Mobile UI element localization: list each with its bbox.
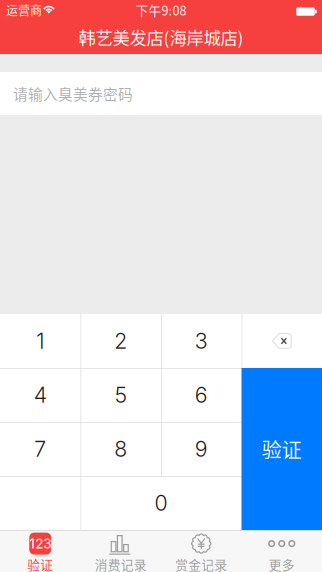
button[interactable]: 7: [0, 422, 80, 476]
staticText: 1: [36, 328, 44, 354]
staticText: 验证: [262, 434, 302, 463]
staticText: 验证: [27, 555, 53, 572]
staticText: 2: [114, 328, 127, 354]
staticText: 更多: [269, 555, 295, 572]
staticText: 运营商: [6, 1, 42, 19]
button[interactable]: 更多: [241, 530, 322, 572]
button[interactable]: 请输入臭美券密码: [0, 72, 322, 115]
staticText: 请输入臭美券密码: [13, 83, 133, 104]
button[interactable]: 5: [80, 368, 161, 422]
staticText: 韩艺美发店(海岸城店): [78, 24, 243, 50]
staticText: 8: [114, 436, 127, 462]
staticText: 9: [195, 436, 208, 462]
button[interactable]: 123: [0, 530, 80, 572]
staticText: 123: [29, 535, 51, 552]
staticText: 5: [115, 382, 127, 408]
staticText: 6: [195, 382, 208, 408]
button[interactable]: 1: [0, 314, 80, 368]
button[interactable]: 3: [161, 314, 241, 368]
button[interactable]: 2: [80, 314, 161, 368]
button[interactable]: 4: [0, 368, 80, 422]
button[interactable]: 8: [80, 422, 161, 476]
button[interactable]: 验证: [241, 368, 322, 530]
button[interactable]: 0: [80, 476, 241, 530]
staticText: 赏金记录: [175, 555, 227, 572]
button[interactable]: 赏金记录: [161, 530, 241, 572]
button[interactable]: 消费记录: [80, 530, 161, 572]
button[interactable]: Delete: [241, 314, 322, 368]
button[interactable]: 9: [161, 422, 241, 476]
staticText: 7: [34, 436, 46, 462]
staticText: 3: [195, 328, 208, 354]
button[interactable]: 6: [161, 368, 241, 422]
staticText: 0: [154, 490, 167, 516]
staticText: 下午9:08: [135, 1, 186, 19]
staticText: 消费记录: [95, 555, 147, 572]
staticText: 4: [34, 382, 47, 408]
